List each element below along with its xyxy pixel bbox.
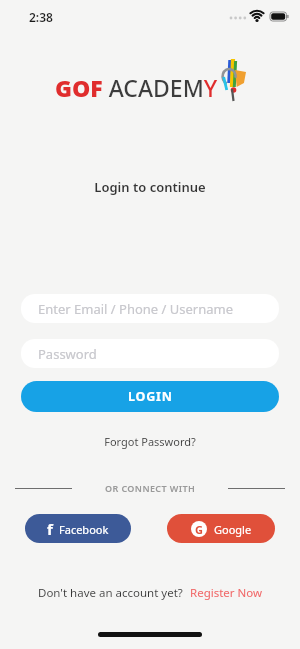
staticText: Login to continue (0, 178, 300, 196)
staticText: Google (214, 522, 252, 537)
staticText: 2:38 (29, 9, 53, 25)
staticText: Register Now (190, 585, 263, 601)
staticText: Don't have an account yet? (38, 585, 183, 601)
staticText: LOGIN (128, 388, 173, 405)
staticText: GOF ACADEMY (55, 72, 218, 103)
staticText: Forgot Password? (0, 434, 300, 449)
staticText: OR CONNECT WITH (105, 482, 196, 494)
staticText: Enter Email / Phone / Username (38, 300, 233, 318)
staticText: Facebook (59, 522, 109, 537)
staticText: Password (38, 345, 97, 363)
staticText: G (195, 522, 203, 537)
staticText: f (47, 519, 53, 539)
